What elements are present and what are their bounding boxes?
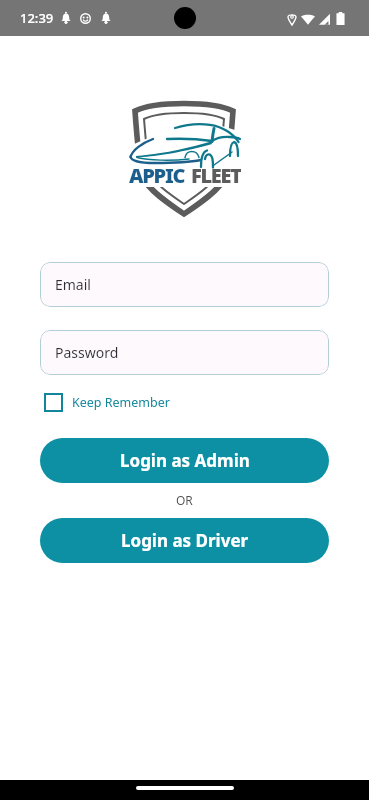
button[interactable]: Login as Driver — [40, 518, 329, 563]
button[interactable]: Email — [40, 262, 329, 307]
staticText: OR — [176, 492, 193, 508]
staticText: Login as Admin — [120, 449, 250, 472]
staticText: Password — [55, 343, 119, 362]
staticText: 12:39 — [20, 9, 54, 27]
button[interactable]: Password — [40, 330, 329, 375]
staticText: Email — [55, 275, 91, 294]
button[interactable]: Login as Admin — [40, 438, 329, 483]
button[interactable]: Keep Remember — [44, 393, 170, 412]
staticText: FLEET — [191, 162, 241, 184]
staticText: APPIC — [129, 162, 185, 184]
staticText: Keep Remember — [72, 394, 170, 411]
staticText: Login as Driver — [121, 529, 249, 552]
